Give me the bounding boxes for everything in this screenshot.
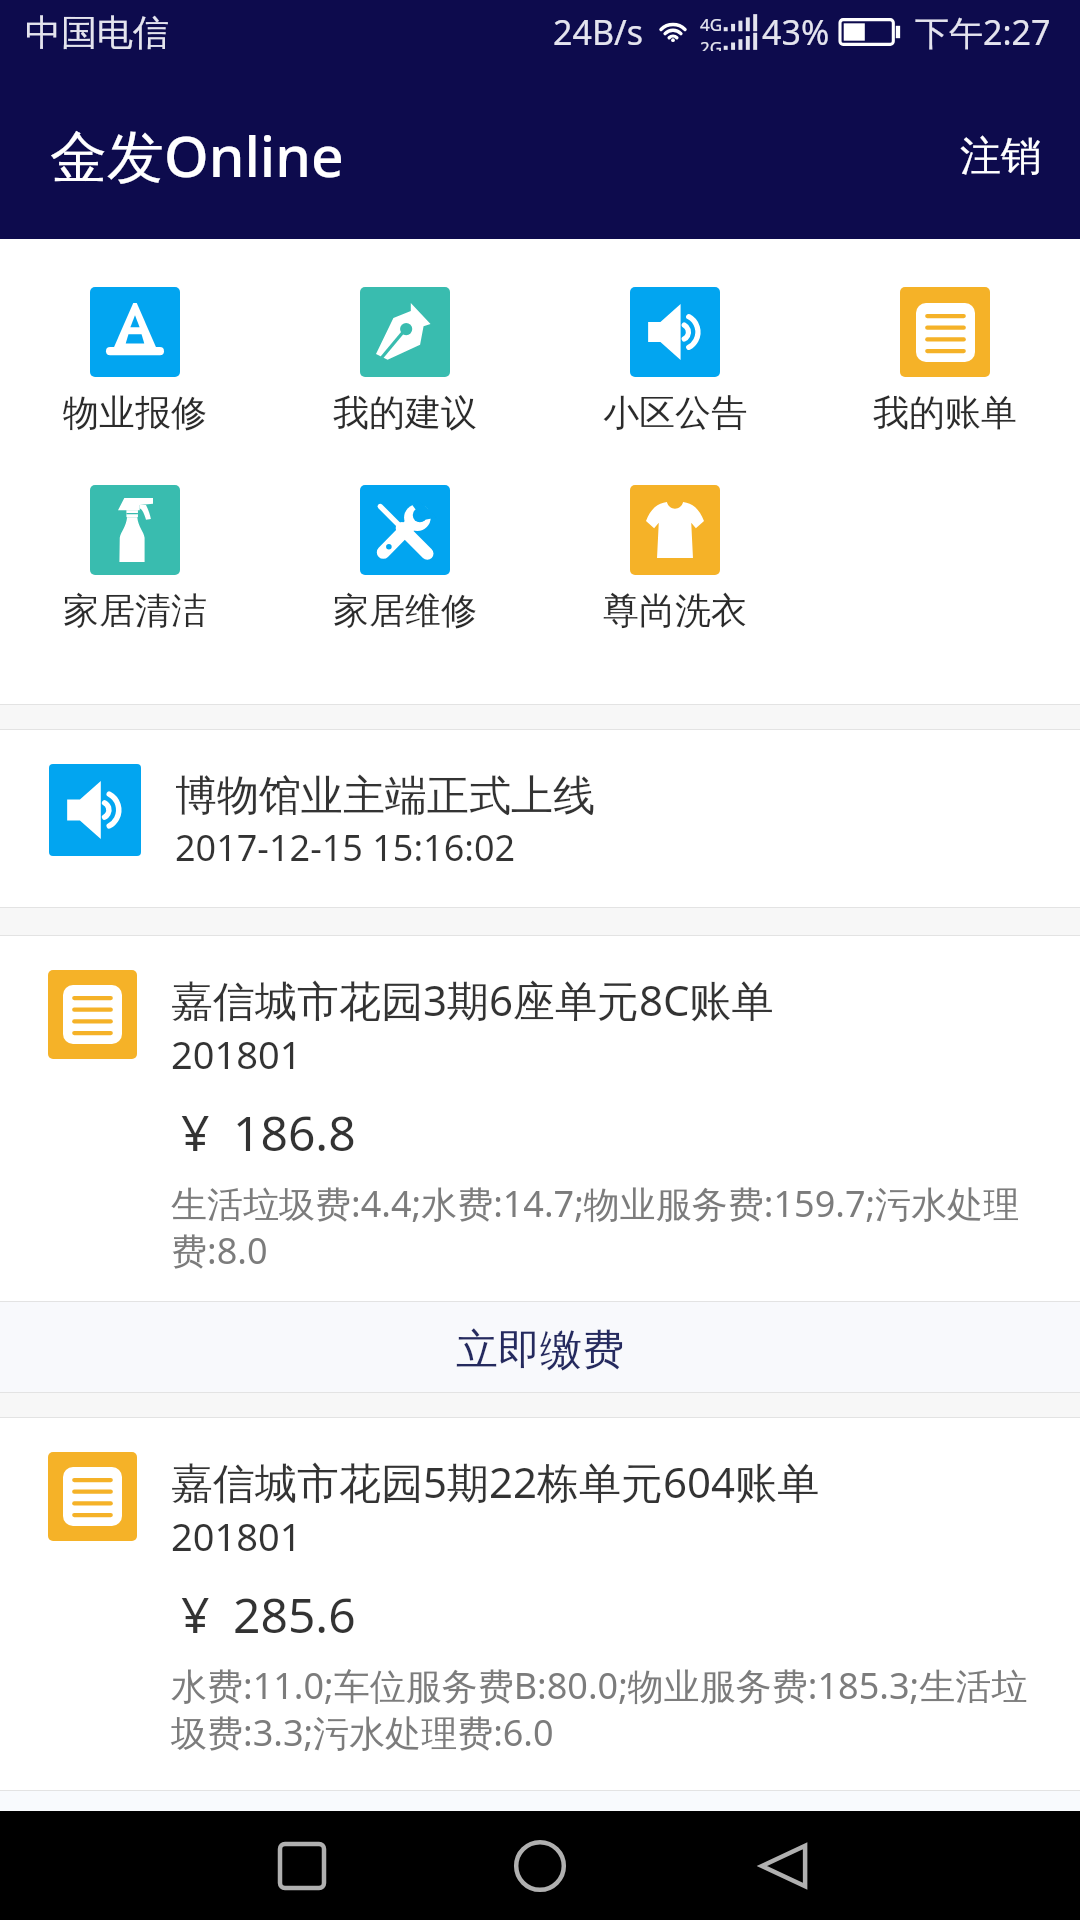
button[interactable]: 家居维修 <box>270 483 540 635</box>
staticText: 博物馆业主端正式上线 <box>175 770 595 823</box>
staticText: 我的账单 <box>873 390 1017 435</box>
staticText: 物业报修 <box>63 390 207 435</box>
staticText: 注销 <box>960 131 1042 183</box>
staticText: 嘉信城市花园3期6座单元8C账单 <box>171 971 774 1028</box>
staticText: 43% <box>762 9 830 55</box>
staticText: 285.6 <box>233 1582 356 1647</box>
button[interactable]: 尊尚洗衣 <box>540 483 810 635</box>
staticText: 生活垃圾费:4.4;水费:14.7;物业服务费:159.7;污水处理费:8.0 <box>171 1179 1046 1275</box>
button[interactable]: 立即缴费 <box>0 1302 1080 1392</box>
button[interactable]: 嘉信城市花园3期6座单元8C账单 <box>0 936 1080 1301</box>
staticText: ¥ <box>181 1098 210 1166</box>
staticText: 201801 <box>171 1028 302 1080</box>
button[interactable]: 博物馆业主端正式上线 <box>0 730 1080 907</box>
staticText: 下午2:27 <box>915 9 1051 55</box>
button[interactable]: Back <box>724 1811 844 1920</box>
staticText: 家居清洁 <box>63 588 207 633</box>
button[interactable]: 小区公告 <box>540 285 810 437</box>
staticText: 小区公告 <box>603 390 747 435</box>
staticText: 4G <box>700 13 723 36</box>
button[interactable]: 嘉信城市花园5期22栋单元604账单 <box>0 1418 1080 1790</box>
button[interactable]: Home <box>480 1811 600 1920</box>
staticText: 尊尚洗衣 <box>603 588 747 633</box>
staticText: 201801 <box>171 1510 302 1562</box>
staticText: 中国电信 <box>25 10 169 55</box>
staticText: ¥ <box>181 1580 210 1648</box>
staticText: 嘉信城市花园5期22栋单元604账单 <box>171 1453 820 1510</box>
button[interactable]: 我的账单 <box>810 285 1080 437</box>
staticText: 186.8 <box>233 1100 356 1165</box>
button[interactable]: Recents <box>242 1811 362 1920</box>
staticText: 2G <box>700 36 723 51</box>
button[interactable]: 家居清洁 <box>0 483 270 635</box>
staticText: 2017-12-15 15:16:02 <box>175 823 516 872</box>
button[interactable]: 我的建议 <box>270 285 540 437</box>
staticText: 水费:11.0;车位服务费B:80.0;物业服务费:185.3;生活垃圾费:3.… <box>171 1661 1046 1757</box>
staticText: 家居维修 <box>333 588 477 633</box>
staticText: 立即缴费 <box>456 1324 624 1377</box>
button[interactable]: 物业报修 <box>0 285 270 437</box>
staticText: 金发Online <box>50 116 344 194</box>
staticText: 我的建议 <box>333 390 477 435</box>
staticText: 24B/s <box>553 9 643 55</box>
button[interactable]: 注销 <box>922 96 1080 208</box>
